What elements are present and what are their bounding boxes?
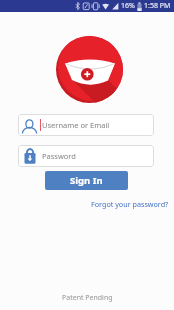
- staticText: Password: [42, 151, 76, 161]
- staticText: Forgot your password?: [91, 199, 169, 209]
- staticText: Patent Pending: [62, 293, 113, 303]
- button[interactable]: Forgot your password?: [91, 199, 169, 209]
- button[interactable]: Sign In: [45, 171, 128, 190]
- staticText: Username or Email: [42, 120, 110, 130]
- button[interactable]: Password: [18, 145, 154, 167]
- staticText: 16%: [121, 1, 135, 11]
- button[interactable]: Username or Email: [18, 114, 154, 136]
- staticText: Sign In: [70, 174, 103, 187]
- staticText: 1:58 PM: [144, 1, 171, 11]
